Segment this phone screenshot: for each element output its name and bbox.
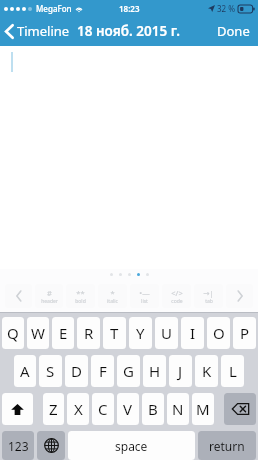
- staticText: W: [31, 323, 45, 343]
- button[interactable]: Previous: [5, 284, 32, 308]
- staticText: E: [59, 323, 68, 343]
- staticText: U: [161, 323, 172, 343]
- staticText: J: [178, 361, 183, 381]
- staticText: Q: [7, 323, 19, 343]
- staticText: P: [240, 323, 250, 343]
- button[interactable]: Bold: [66, 284, 95, 308]
- staticText: C: [98, 399, 108, 419]
- staticText: Z: [49, 399, 58, 419]
- button[interactable]: W: [27, 317, 49, 349]
- staticText: Done: [217, 22, 250, 40]
- button[interactable]: F: [91, 355, 114, 387]
- staticText: Timeline: [17, 22, 70, 40]
- staticText: </>: [171, 288, 183, 298]
- button[interactable]: 123: [2, 431, 34, 460]
- staticText: T: [110, 323, 119, 343]
- button[interactable]: Q: [2, 317, 24, 349]
- button[interactable]: J: [169, 355, 192, 387]
- staticText: *: [110, 288, 115, 298]
- staticText: G: [123, 361, 134, 381]
- staticText: A: [20, 361, 30, 381]
- staticText: •—: [139, 288, 150, 298]
- button[interactable]: O: [207, 317, 230, 349]
- staticText: list: [141, 298, 148, 305]
- button[interactable]: A: [14, 355, 36, 387]
- button[interactable]: G: [117, 355, 140, 387]
- button[interactable]: H: [143, 355, 166, 387]
- staticText: V: [123, 399, 133, 419]
- button[interactable]: L: [221, 355, 244, 387]
- button[interactable]: X: [67, 393, 89, 425]
- staticText: Y: [136, 323, 145, 343]
- staticText: italic: [107, 298, 118, 305]
- button[interactable]: U: [155, 317, 178, 349]
- button[interactable]: V: [117, 393, 139, 425]
- staticText: tab: [205, 298, 213, 305]
- button[interactable]: C: [92, 393, 114, 425]
- button[interactable]: Backspace: [224, 393, 256, 425]
- staticText: R: [84, 323, 94, 343]
- button[interactable]: T: [103, 317, 126, 349]
- button[interactable]: Timeline: [0, 18, 76, 44]
- staticText: 18:23: [119, 3, 140, 14]
- staticText: →|: [203, 288, 214, 298]
- button[interactable]: space: [68, 431, 195, 460]
- button[interactable]: Change keyboard: [37, 431, 65, 460]
- button[interactable]: M: [192, 393, 214, 425]
- button[interactable]: Tab: [194, 284, 223, 308]
- button[interactable]: P: [233, 317, 256, 349]
- button[interactable]: Shift: [2, 393, 33, 425]
- staticText: K: [202, 361, 212, 381]
- staticText: **: [76, 288, 85, 298]
- staticText: H: [149, 361, 161, 381]
- staticText: B: [148, 399, 158, 419]
- button[interactable]: Z: [43, 393, 64, 425]
- button[interactable]: S: [39, 355, 62, 387]
- staticText: 18 нояб. 2015 г.: [77, 22, 181, 40]
- staticText: return: [209, 438, 245, 454]
- button[interactable]: B: [142, 393, 164, 425]
- staticText: 32 %: [217, 3, 236, 14]
- staticText: N: [172, 399, 184, 419]
- button[interactable]: I: [181, 317, 204, 349]
- staticText: code: [171, 298, 183, 305]
- button[interactable]: List: [130, 284, 159, 308]
- button[interactable]: Header: [35, 284, 63, 308]
- button[interactable]: K: [195, 355, 218, 387]
- staticText: MegaFon: [36, 3, 72, 14]
- staticText: D: [71, 361, 82, 381]
- staticText: #: [47, 288, 52, 298]
- button[interactable]: N: [167, 393, 189, 425]
- button[interactable]: Italic: [98, 284, 127, 308]
- staticText: X: [74, 399, 83, 419]
- button[interactable]: return: [198, 431, 256, 460]
- button[interactable]: Done: [209, 17, 258, 45]
- staticText: header: [41, 298, 58, 305]
- button[interactable]: D: [65, 355, 88, 387]
- staticText: O: [213, 323, 225, 343]
- staticText: I: [190, 323, 196, 343]
- button[interactable]: R: [77, 317, 100, 349]
- staticText: L: [229, 361, 237, 381]
- staticText: M: [196, 399, 210, 419]
- staticText: bold: [75, 298, 86, 305]
- staticText: space: [115, 438, 148, 454]
- button[interactable]: E: [52, 317, 74, 349]
- staticText: F: [99, 361, 107, 381]
- button[interactable]: Y: [129, 317, 152, 349]
- staticText: S: [46, 361, 55, 381]
- staticText: 123: [8, 438, 29, 454]
- button[interactable]: Code: [162, 284, 191, 308]
- button[interactable]: Next: [226, 284, 253, 308]
